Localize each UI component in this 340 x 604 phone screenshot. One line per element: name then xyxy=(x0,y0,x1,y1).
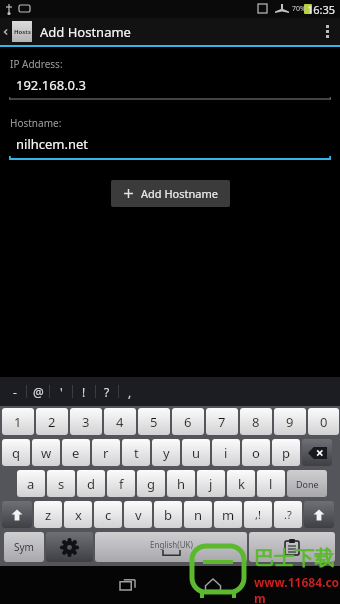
staticText: 3 xyxy=(82,413,90,431)
staticText: v xyxy=(135,506,142,524)
button[interactable]: Clipboard xyxy=(249,532,335,562)
button[interactable]: Keyboard settings xyxy=(46,532,93,562)
staticText: www.11684.com xyxy=(254,574,340,604)
button[interactable]: t xyxy=(122,439,150,466)
button[interactable]: i xyxy=(212,439,240,466)
button[interactable]: Home xyxy=(170,566,255,604)
staticText: Hostname: xyxy=(10,116,62,130)
staticText: Hosts xyxy=(14,28,31,36)
staticText: n xyxy=(194,506,203,524)
button[interactable]: Shift xyxy=(2,501,32,528)
button[interactable]: Recents xyxy=(85,566,170,604)
staticText: 7 xyxy=(218,413,226,431)
staticText: , xyxy=(128,384,132,400)
button[interactable]: g xyxy=(137,470,165,497)
button[interactable]: ! xyxy=(73,377,95,406)
staticText: c xyxy=(105,506,112,524)
button[interactable]: q xyxy=(2,439,30,466)
staticText: 2 xyxy=(48,413,56,431)
button[interactable]: 2 xyxy=(36,408,68,435)
staticText: ' xyxy=(60,384,63,400)
staticText: ? xyxy=(104,384,110,400)
button[interactable]: u xyxy=(182,439,210,466)
button[interactable]: 9 xyxy=(274,408,306,435)
staticText: m xyxy=(222,506,235,524)
button[interactable]: 0 xyxy=(308,408,339,435)
button[interactable]: 1 xyxy=(2,408,34,435)
button[interactable]: More options xyxy=(314,18,340,45)
button[interactable]: Space xyxy=(95,532,247,562)
button[interactable]: z xyxy=(34,501,62,528)
button[interactable]: 3 xyxy=(70,408,102,435)
button[interactable]: 4 xyxy=(104,408,136,435)
button[interactable]: m xyxy=(214,501,242,528)
button[interactable]: ' xyxy=(50,377,72,406)
button[interactable]: @ xyxy=(27,377,49,406)
staticText: Add Hostname xyxy=(141,186,218,201)
staticText: 8 xyxy=(252,413,260,431)
staticText: r xyxy=(103,444,109,462)
staticText: t xyxy=(134,444,139,462)
button[interactable]: o xyxy=(242,439,270,466)
staticText: k xyxy=(238,475,245,493)
button[interactable]: Shift xyxy=(304,501,334,528)
staticText: Add Hostname xyxy=(40,23,131,41)
button[interactable]: w xyxy=(32,439,60,466)
staticText: a xyxy=(27,475,35,493)
button[interactable]: f xyxy=(107,470,135,497)
button[interactable]: 5 xyxy=(138,408,170,435)
staticText: w xyxy=(41,444,52,462)
button[interactable]: .? xyxy=(274,501,302,528)
button[interactable]: b xyxy=(154,501,182,528)
button[interactable]: 6 xyxy=(172,408,204,435)
staticText: IP Address: xyxy=(10,57,63,71)
button[interactable]: r xyxy=(92,439,120,466)
button[interactable]: 8 xyxy=(240,408,272,435)
button[interactable]: x xyxy=(64,501,92,528)
staticText: nilhcem.net xyxy=(16,135,89,153)
staticText: s xyxy=(58,475,65,493)
staticText: @ xyxy=(33,384,44,400)
staticText: ,! xyxy=(255,507,261,522)
staticText: - xyxy=(13,384,17,400)
button[interactable]: Done xyxy=(287,470,327,497)
button[interactable]: v xyxy=(124,501,152,528)
staticText: b xyxy=(164,506,172,524)
button[interactable]: 192.168.0.3 xyxy=(9,76,331,100)
button[interactable]: l xyxy=(257,470,285,497)
button[interactable]: k xyxy=(227,470,255,497)
staticText: 巴士下载 xyxy=(254,546,334,571)
button[interactable]: h xyxy=(167,470,195,497)
button[interactable]: ? xyxy=(96,377,118,406)
button[interactable]: e xyxy=(62,439,90,466)
staticText: q xyxy=(12,444,20,462)
staticText: x xyxy=(75,506,82,524)
staticText: i xyxy=(224,444,228,462)
staticText: d xyxy=(87,475,95,493)
button[interactable]: , xyxy=(119,377,141,406)
staticText: 4 xyxy=(116,413,124,431)
button[interactable]: Backspace xyxy=(302,439,332,466)
staticText: e xyxy=(72,444,80,462)
button[interactable]: a xyxy=(17,470,45,497)
button[interactable]: ,! xyxy=(244,501,272,528)
button[interactable]: j xyxy=(197,470,225,497)
button[interactable]: p xyxy=(272,439,300,466)
staticText: 70% xyxy=(292,4,306,14)
button[interactable]: 7 xyxy=(206,408,238,435)
button[interactable]: nilhcem.net xyxy=(9,135,331,160)
staticText: y xyxy=(163,444,170,462)
staticText: Sym xyxy=(14,540,34,554)
button[interactable]: Navigate up xyxy=(0,18,340,45)
button[interactable]: Add Hostname xyxy=(111,180,230,207)
button[interactable]: y xyxy=(152,439,180,466)
staticText: z xyxy=(45,506,52,524)
button[interactable]: d xyxy=(77,470,105,497)
button[interactable]: s xyxy=(47,470,75,497)
button[interactable]: - xyxy=(4,377,26,406)
button[interactable]: n xyxy=(184,501,212,528)
other: Navigate up xyxy=(0,18,12,45)
staticText: o xyxy=(252,444,260,462)
button[interactable]: c xyxy=(94,501,122,528)
button[interactable]: Sym xyxy=(4,532,44,562)
